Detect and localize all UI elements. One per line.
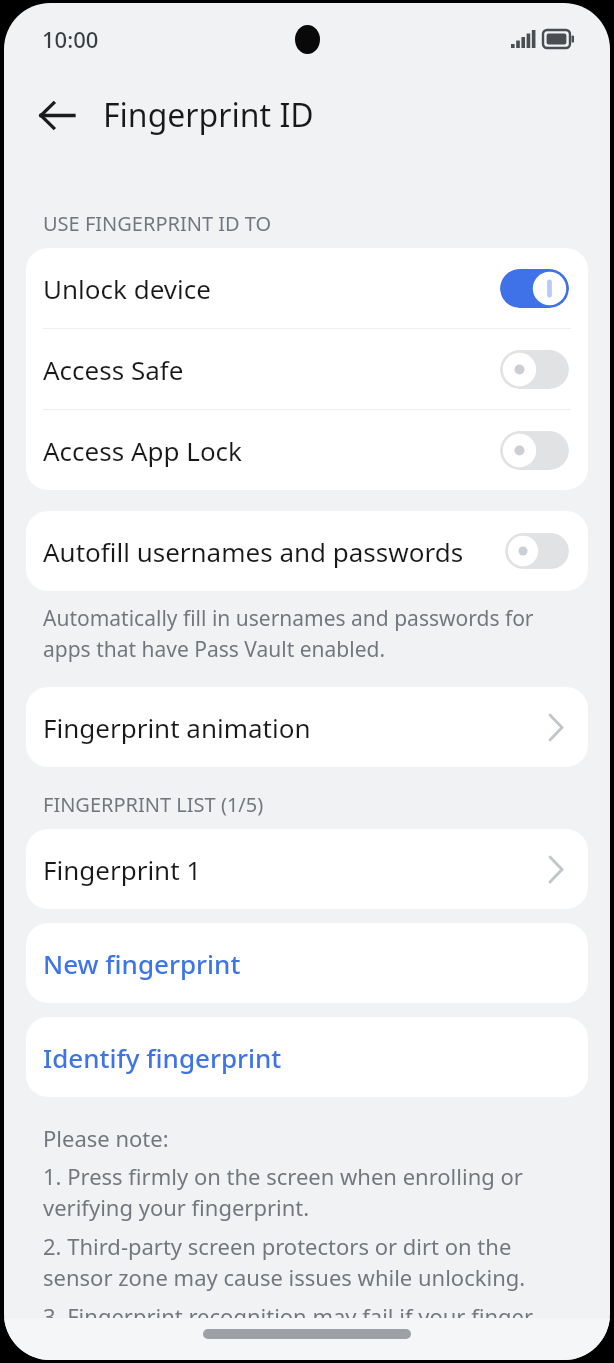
button[interactable]: Autofill usernames and passwords bbox=[26, 511, 588, 591]
staticText: Automatically fill in usernames and pass… bbox=[43, 604, 571, 663]
button[interactable]: Disabled bbox=[505, 533, 569, 569]
button[interactable]: Fingerprint animation bbox=[26, 687, 588, 767]
staticText: New fingerprint bbox=[43, 946, 241, 981]
staticText: 10:00 bbox=[42, 24, 99, 54]
staticText: USE FINGERPRINT ID TO bbox=[43, 210, 272, 237]
button[interactable]: Unlock device bbox=[26, 248, 588, 328]
staticText: Fingerprint animation bbox=[43, 710, 549, 745]
button[interactable]: Disabled bbox=[500, 350, 569, 389]
button[interactable]: Access App Lock bbox=[26, 410, 588, 490]
staticText: Please note: bbox=[43, 1123, 169, 1153]
button[interactable]: New fingerprint bbox=[26, 923, 588, 1003]
button[interactable]: Fingerprint 1 bbox=[26, 829, 588, 909]
staticText: 2. Third-party screen protectors or dirt… bbox=[43, 1231, 571, 1293]
button[interactable]: Back bbox=[30, 89, 82, 141]
staticText: Access Safe bbox=[43, 352, 500, 387]
staticText: 1. Press firmly on the screen when enrol… bbox=[43, 1161, 571, 1223]
button[interactable]: Access Safe bbox=[26, 329, 588, 409]
staticText: Access App Lock bbox=[43, 433, 500, 468]
button[interactable]: Disabled bbox=[500, 431, 569, 470]
staticText: 3. Fingerprint recognition may fail if y… bbox=[43, 1301, 534, 1331]
staticText: Identify fingerprint bbox=[43, 1040, 282, 1075]
button[interactable]: Enabled bbox=[500, 269, 569, 308]
staticText: Fingerprint ID bbox=[103, 93, 314, 137]
staticText: Unlock device bbox=[43, 271, 500, 306]
staticText: Autofill usernames and passwords bbox=[43, 534, 505, 569]
button[interactable]: Identify fingerprint bbox=[26, 1017, 588, 1097]
staticText: Fingerprint 1 bbox=[43, 852, 549, 887]
staticText: FINGERPRINT LIST (1/5) bbox=[43, 791, 264, 818]
